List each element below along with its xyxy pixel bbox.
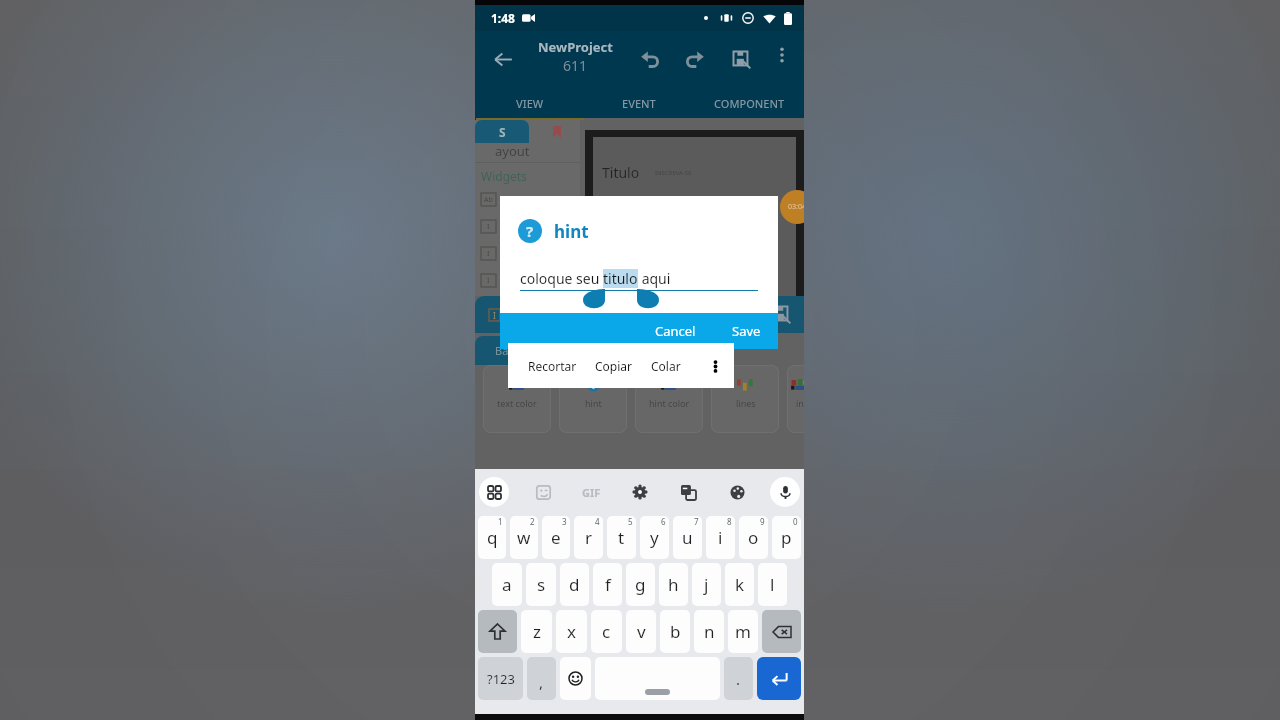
staticText: NewProject [538,38,613,56]
staticText: ayout [495,142,530,160]
button[interactable]: Save [721,39,761,79]
button[interactable]: Text tool [483,304,505,326]
button[interactable]: j [692,563,721,606]
staticText: GIF [582,485,601,500]
button[interactable]: Stickers [528,477,558,507]
button[interactable]: Shift [478,610,517,653]
staticText: w [517,526,531,549]
button[interactable]: a [492,563,522,606]
button[interactable]: Colar [642,349,690,383]
button[interactable]: in [787,365,804,433]
button[interactable]: VIEW [475,88,584,118]
button[interactable]: , [527,657,556,700]
button[interactable]: 5 [607,516,636,559]
button[interactable]: Redo [675,39,715,79]
staticText: p [781,526,792,549]
button[interactable]: ?123 [478,657,523,700]
button[interactable]: Theme [722,477,752,507]
staticText: g [635,573,646,596]
button[interactable]: d [560,563,589,606]
button[interactable]: Favorites tab [529,120,585,143]
button[interactable]: 9 [739,516,768,559]
button[interactable]: Translate [673,477,703,507]
button[interactable]: 8 [706,516,735,559]
button[interactable]: Emoji [560,657,591,700]
button[interactable]: 6 [640,516,669,559]
button[interactable]: Enter [757,657,801,700]
button[interactable]: Layout tab [475,120,529,143]
button[interactable]: 4 [574,516,603,559]
button[interactable]: Copiar [586,349,642,383]
button[interactable]: z [521,610,552,653]
staticText: Ab [484,195,493,205]
staticText: j [704,573,709,596]
button[interactable]: . [724,657,753,700]
button[interactable]: 3 [542,516,570,559]
staticText: AutoComplete [501,241,569,255]
staticText: aqui [638,269,671,288]
staticText: 9 [760,516,765,527]
button[interactable]: 7 [673,516,702,559]
staticText: text color [497,397,537,409]
staticText: c [602,620,611,643]
button[interactable]: Ba [475,336,529,365]
button[interactable]: hint [559,365,627,433]
staticText: hint [585,397,602,409]
button[interactable]: hint color [635,365,703,433]
button[interactable]: More [700,351,730,381]
button[interactable]: More options [766,39,798,71]
button[interactable]: n [694,610,724,653]
staticText: d [569,573,580,596]
button[interactable]: text color [483,365,551,433]
button[interactable]: m [728,610,758,653]
staticText: I [487,222,490,232]
button[interactable]: s [526,563,556,606]
staticText: 6 [661,516,666,527]
staticText: in [796,397,804,409]
button[interactable]: v [626,610,656,653]
staticText: ?123 [487,670,515,688]
staticText: lines [736,397,756,409]
staticText: k [735,573,745,596]
button[interactable]: GIF [576,477,606,507]
button[interactable]: Backspace [762,610,801,653]
staticText: Colar [651,358,681,374]
staticText: VIEW [516,96,544,111]
button[interactable]: Save project [762,296,800,333]
button[interactable]: Recortar [519,349,586,383]
button[interactable]: Settings [625,477,655,507]
button[interactable]: COMPONENT [694,88,804,118]
button[interactable]: 0 [772,516,801,559]
staticText: . [736,669,741,689]
button[interactable]: g [626,563,655,606]
button[interactable]: c [591,610,622,653]
staticText: z [533,620,541,643]
button[interactable]: Back [483,39,523,79]
staticText: Save [732,322,761,340]
button[interactable]: x [556,610,587,653]
button[interactable]: Voice input [770,477,800,507]
staticText: e [551,526,561,549]
button[interactable]: Cancel [646,315,705,347]
button[interactable]: Save [723,315,770,347]
button[interactable]: Apps [479,477,509,507]
button[interactable]: l [758,563,787,606]
button[interactable]: 2 [510,516,538,559]
button[interactable]: lines [711,365,779,433]
button[interactable]: Space [595,657,720,700]
button[interactable]: k [725,563,754,606]
button[interactable]: EVENT [584,88,694,118]
button[interactable]: 1 [478,516,506,559]
button[interactable]: Undo [630,39,670,79]
staticText: 4 [595,516,600,527]
button[interactable]: f [593,563,622,606]
staticText: 1 [498,516,503,527]
staticText: h [668,573,679,596]
staticText: MultiAuto [501,268,548,282]
button[interactable]: b [660,610,690,653]
staticText: y [650,526,659,549]
button[interactable]: h [659,563,688,606]
button[interactable]: Timer [780,190,804,224]
staticText: t [618,526,625,549]
